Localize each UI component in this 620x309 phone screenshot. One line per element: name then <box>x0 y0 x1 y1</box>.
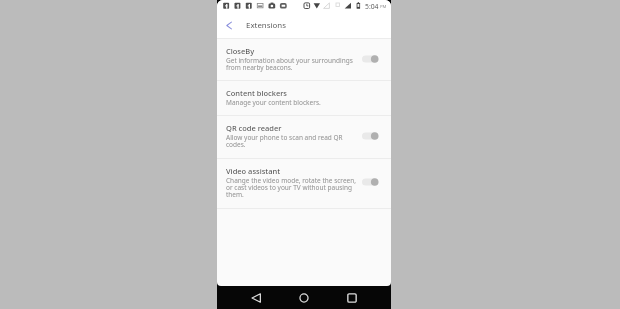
button[interactable]: Toggle <box>362 175 385 189</box>
staticText: Content blockers <box>226 88 288 98</box>
staticText: PM <box>380 3 387 9</box>
button[interactable]: CloseBy <box>217 39 391 80</box>
button[interactable]: Back <box>217 13 239 38</box>
staticText: Change the video mode, rotate the screen… <box>226 177 357 198</box>
staticText: Video assistant <box>226 166 281 176</box>
button[interactable]: Back <box>242 286 270 309</box>
button[interactable]: Content blockers <box>217 81 391 115</box>
staticText: 5:04 <box>365 2 379 11</box>
button[interactable]: QR code reader <box>217 116 391 158</box>
staticText: QR code reader <box>226 123 282 133</box>
button[interactable]: Recents <box>338 286 366 309</box>
button[interactable]: Home <box>290 286 318 309</box>
staticText: Get information about your surroundings … <box>226 57 353 71</box>
button[interactable]: Toggle <box>362 129 385 143</box>
staticText: CloseBy <box>226 46 255 56</box>
button[interactable]: Toggle <box>362 52 385 66</box>
staticText: Allow your phone to scan and read QR cod… <box>226 134 343 148</box>
staticText: Extensions <box>246 20 286 31</box>
staticText: Manage your content blockers. <box>226 99 321 106</box>
button[interactable]: Video assistant <box>217 159 391 208</box>
